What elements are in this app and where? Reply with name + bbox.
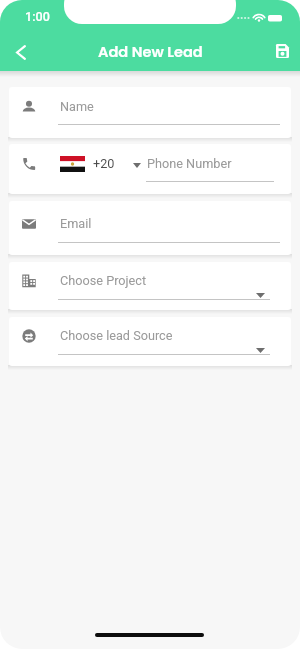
staticText: Name bbox=[60, 99, 94, 114]
button[interactable]: Save bbox=[266, 34, 299, 68]
staticText: 1:00 bbox=[25, 9, 50, 24]
staticText: Choose Project bbox=[60, 273, 147, 288]
button[interactable]: +20 bbox=[9, 144, 291, 194]
button[interactable]: Email bbox=[9, 201, 291, 255]
button[interactable]: Name bbox=[9, 87, 291, 138]
button[interactable]: Back bbox=[4, 34, 37, 68]
staticText: +20 bbox=[93, 156, 115, 171]
staticText: Phone Number bbox=[147, 156, 232, 171]
staticText: Choose lead Source bbox=[60, 328, 173, 343]
button[interactable]: Choose lead Source bbox=[9, 317, 291, 366]
staticText: Email bbox=[60, 216, 92, 231]
staticText: Add New Lead bbox=[98, 42, 203, 62]
button[interactable]: Choose Project bbox=[9, 262, 291, 310]
